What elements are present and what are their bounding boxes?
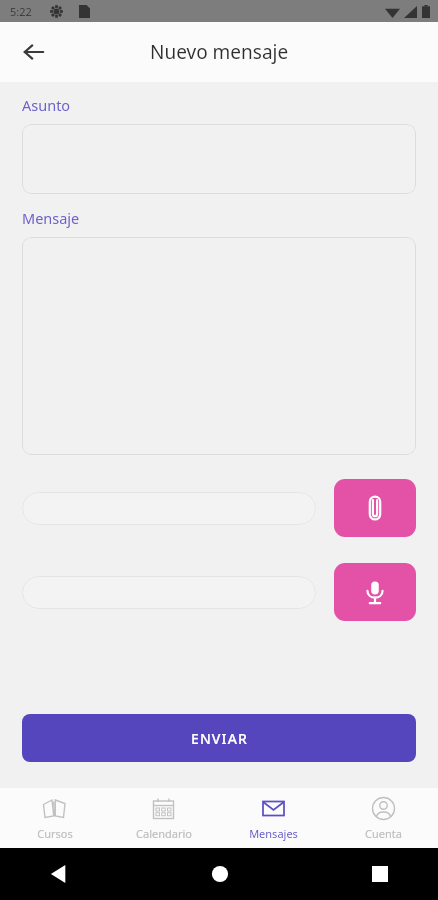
button[interactable]: Cursos	[0, 788, 109, 848]
staticText: 5:22	[10, 4, 32, 19]
staticText: Cursos	[37, 826, 73, 841]
staticText: Cuenta	[365, 826, 402, 841]
button[interactable]	[22, 492, 316, 525]
button[interactable]: Attach file	[334, 479, 416, 537]
button[interactable]: Record audio	[334, 563, 416, 621]
button[interactable]: ENVIAR	[22, 714, 416, 762]
button[interactable]: Mensajes	[218, 788, 328, 848]
staticText: Asunto	[22, 95, 71, 115]
button[interactable]: Back	[12, 30, 56, 74]
button[interactable]: Calendario	[109, 788, 218, 848]
button[interactable]: Cuenta	[328, 788, 438, 848]
button[interactable]	[22, 576, 316, 609]
staticText: Mensaje	[22, 208, 80, 228]
staticText: Calendario	[136, 826, 192, 841]
staticText: ENVIAR	[191, 729, 248, 748]
button[interactable]	[22, 124, 416, 194]
staticText: Mensajes	[249, 826, 298, 841]
staticText: Nuevo mensaje	[150, 39, 289, 65]
